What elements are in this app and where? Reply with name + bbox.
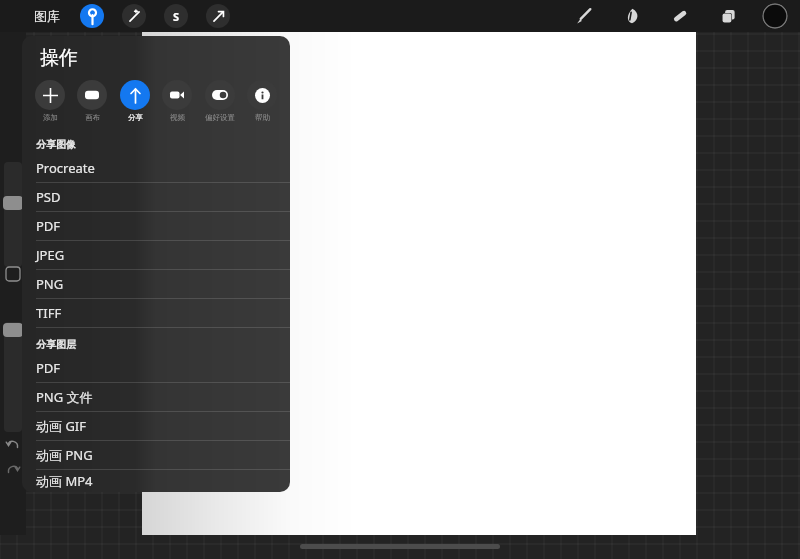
staticText: 偏好设置 xyxy=(205,113,235,122)
button[interactable]: Opacity xyxy=(3,323,23,337)
staticText: 画布 xyxy=(85,113,100,122)
button[interactable]: Adjustments xyxy=(122,4,146,28)
staticText: 帮助 xyxy=(255,113,270,122)
staticText: PSD xyxy=(36,188,61,206)
button[interactable]: Erase xyxy=(668,4,692,28)
button[interactable]: 视频 xyxy=(161,80,193,122)
staticText: 图库 xyxy=(34,8,60,24)
button[interactable]: Selection xyxy=(164,4,188,28)
button[interactable]: 帮助 xyxy=(246,80,278,122)
staticText: 视频 xyxy=(170,113,185,122)
staticText: 分享图层 xyxy=(36,338,76,351)
button[interactable]: 画布 xyxy=(76,80,108,122)
button[interactable]: 偏好设置 xyxy=(204,80,236,122)
staticText: 动画 MP4 xyxy=(36,472,93,490)
button[interactable]: Brush size xyxy=(3,196,23,210)
button[interactable]: PNG 文件 xyxy=(22,383,290,411)
button[interactable]: Color xyxy=(762,3,788,29)
button[interactable]: Smudge xyxy=(620,4,644,28)
button[interactable]: 图库 xyxy=(30,8,64,24)
staticText: 动画 PNG xyxy=(36,446,93,464)
button[interactable]: 分享 xyxy=(119,80,151,122)
staticText: PNG xyxy=(36,275,64,293)
button[interactable]: PNG xyxy=(22,270,290,298)
button[interactable]: Layers xyxy=(716,4,740,28)
button[interactable]: Transform xyxy=(206,4,230,28)
button[interactable]: Undo xyxy=(5,435,21,451)
button[interactable]: Paint xyxy=(572,4,596,28)
button[interactable]: TIFF xyxy=(22,299,290,327)
button[interactable]: Redo xyxy=(5,460,21,476)
button[interactable]: Actions xyxy=(80,4,104,28)
staticText: PDF xyxy=(36,217,61,235)
staticText: Procreate xyxy=(36,159,95,177)
staticText: 分享图像 xyxy=(36,138,76,151)
staticText: TIFF xyxy=(36,304,62,322)
staticText: 操作 xyxy=(40,46,78,70)
staticText: PDF xyxy=(36,359,61,377)
button[interactable]: PSD xyxy=(22,183,290,211)
staticText: JPEG xyxy=(36,246,65,264)
button[interactable]: 添加 xyxy=(34,80,66,122)
staticText: PNG 文件 xyxy=(36,388,93,406)
button[interactable]: 动画 MP4 xyxy=(22,470,290,492)
button[interactable]: Procreate xyxy=(22,154,290,182)
button[interactable]: Modify xyxy=(6,267,20,281)
staticText: 添加 xyxy=(43,113,58,122)
staticText: 动画 GIF xyxy=(36,417,86,435)
staticText: 分享 xyxy=(128,113,143,122)
button[interactable]: JPEG xyxy=(22,241,290,269)
button[interactable]: PDF xyxy=(22,212,290,240)
button[interactable]: PDF xyxy=(22,354,290,382)
button[interactable]: 动画 GIF xyxy=(22,412,290,440)
staticText: S xyxy=(173,9,180,24)
button[interactable]: 动画 PNG xyxy=(22,441,290,469)
